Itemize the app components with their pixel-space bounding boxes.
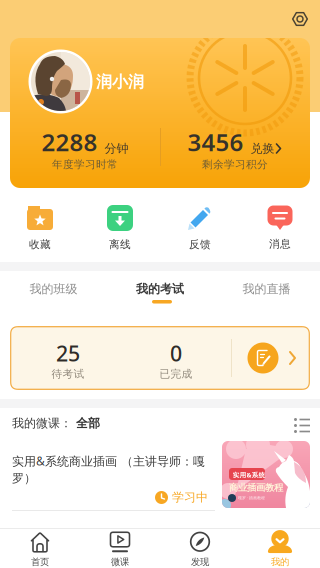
button[interactable]: 微课 — [80, 529, 160, 568]
button[interactable] — [28, 49, 92, 113]
button[interactable]: 2288 — [10, 126, 160, 171]
staticText: 年度学习时常 — [52, 158, 118, 171]
staticText: 已完成 — [159, 367, 192, 380]
staticText: 学习中 — [172, 490, 208, 505]
staticText: 我的 — [271, 556, 289, 568]
button[interactable] — [292, 11, 308, 27]
staticText: 待考试 — [51, 367, 84, 380]
button[interactable]: 我的考试 — [107, 272, 213, 306]
button[interactable]: 收藏 — [0, 205, 80, 251]
staticText: 我的直播 — [242, 282, 290, 296]
button[interactable]: 我的 — [240, 529, 320, 568]
button[interactable]: 我的班级 — [0, 272, 107, 306]
staticText: 实用&系统商业插画 （主讲导师：嘎 — [12, 453, 205, 469]
staticText: 收藏 — [29, 238, 51, 251]
staticText: 发现 — [191, 556, 209, 568]
staticText: 我的微课： — [12, 416, 72, 431]
button[interactable]: 发现 — [160, 529, 240, 568]
button[interactable] — [290, 414, 314, 437]
button[interactable]: 实用&系统商业插画 （主讲导师：嘎 — [0, 438, 320, 515]
staticText: 离线 — [109, 238, 131, 251]
staticText: 0 — [170, 339, 182, 367]
button[interactable]: 全部 — [74, 414, 102, 433]
button[interactable]: 3456 — [160, 126, 310, 171]
staticText: 润小润 — [96, 72, 144, 92]
button[interactable]: 消息 — [240, 205, 320, 251]
staticText: 消息 — [269, 237, 291, 251]
button[interactable]: 25 — [10, 326, 310, 390]
staticText: 嘎罗 · 插画教程 — [238, 495, 265, 500]
staticText: 我的班级 — [29, 282, 77, 296]
staticText: 全部 — [76, 416, 100, 431]
staticText: 首页 — [31, 556, 49, 568]
staticText: 罗） — [12, 471, 36, 486]
button[interactable]: 首页 — [0, 529, 80, 568]
staticText: 我的考试 — [136, 282, 184, 296]
staticText: 3456 — [187, 126, 243, 158]
staticText: 分钟 — [104, 141, 128, 156]
button[interactable]: 反馈 — [160, 205, 240, 251]
staticText: 25 — [56, 339, 80, 367]
staticText: 兑换 — [250, 141, 274, 156]
staticText: 2288 — [41, 126, 97, 158]
staticText: 剩余学习积分 — [202, 158, 268, 171]
button[interactable]: 我的直播 — [213, 272, 320, 306]
staticText: 实用&系统 — [232, 470, 265, 479]
button[interactable] — [10, 38, 310, 188]
staticText: 微课 — [111, 556, 129, 568]
staticText: 商业插画教程 — [229, 482, 283, 493]
staticText: 反馈 — [189, 238, 211, 251]
button[interactable]: 离线 — [80, 205, 160, 251]
